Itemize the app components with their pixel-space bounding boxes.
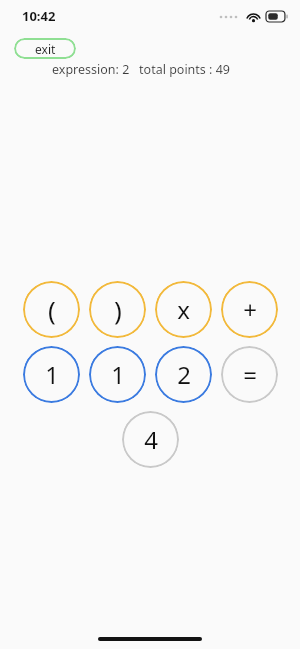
staticText: 1 — [45, 358, 59, 391]
button[interactable]: 4 — [122, 411, 179, 468]
staticText: 1 — [111, 358, 125, 391]
staticText: 10:42 — [22, 7, 56, 25]
button[interactable]: ) — [89, 281, 146, 338]
button[interactable]: ( — [23, 281, 80, 338]
staticText: x — [177, 293, 190, 326]
staticText: ( — [48, 292, 56, 327]
staticText: exit — [35, 41, 56, 57]
staticText: = — [243, 358, 257, 391]
button[interactable]: 1 — [23, 346, 80, 403]
button[interactable]: x — [155, 281, 212, 338]
button[interactable]: 1 — [89, 346, 146, 403]
staticText: 2 — [177, 358, 191, 391]
staticText: expression: 2 total points : 49 — [52, 61, 230, 78]
staticText: ) — [114, 292, 122, 327]
button[interactable]: + — [221, 281, 278, 338]
staticText: 4 — [144, 423, 158, 456]
button[interactable]: 2 — [155, 346, 212, 403]
button[interactable]: = — [221, 346, 278, 403]
button[interactable]: exit — [14, 38, 76, 59]
staticText: + — [243, 293, 257, 326]
